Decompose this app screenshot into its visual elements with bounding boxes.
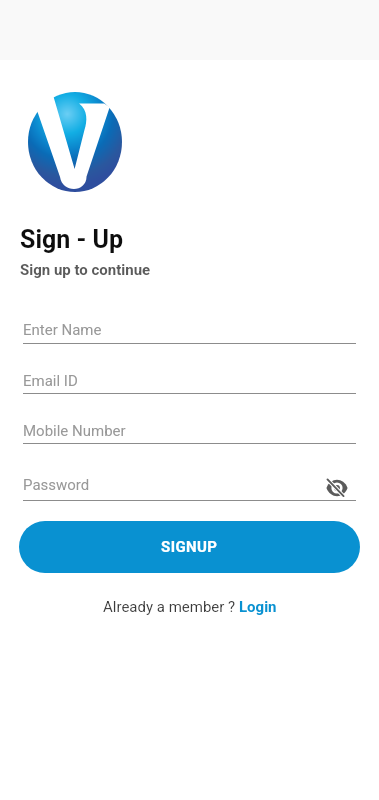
staticText: Mobile Number	[23, 422, 126, 440]
staticText: Already a member ?	[103, 598, 239, 616]
button[interactable]: Show password	[321, 475, 353, 500]
staticText: Sign up to continue	[20, 261, 151, 279]
staticText: SIGNUP	[161, 538, 218, 556]
staticText: Enter Name	[23, 321, 102, 339]
button[interactable]: Email ID	[0, 372, 379, 394]
button[interactable]: SIGNUP	[19, 521, 360, 573]
staticText: Sign - Up	[20, 225, 124, 254]
staticText: Email ID	[23, 372, 78, 390]
button[interactable]: Mobile Number	[0, 422, 379, 444]
button[interactable]: Password	[0, 476, 379, 501]
staticText: Password	[23, 476, 90, 494]
staticText: Login	[239, 598, 277, 616]
button[interactable]: Login	[239, 598, 277, 616]
button[interactable]: Enter Name	[0, 321, 379, 344]
